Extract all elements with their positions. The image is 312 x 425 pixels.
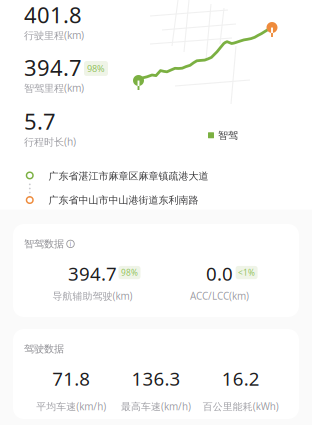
staticText: 智驾数据 xyxy=(24,237,64,250)
staticText: 98% xyxy=(121,267,138,278)
staticText: 71.8 xyxy=(52,366,90,391)
staticText: 394.7 xyxy=(68,261,117,286)
staticText: 广东省湛江市麻章区麻章镇疏港大道 xyxy=(48,170,208,182)
staticText: 5.7 xyxy=(24,106,56,136)
staticText: 导航辅助驾驶(km) xyxy=(52,289,132,303)
staticText: 394.7 xyxy=(24,52,82,82)
staticText: 98% xyxy=(87,62,105,75)
staticText: 136.3 xyxy=(131,366,180,391)
staticText: 广东省中山市中山港街道东利南路 xyxy=(48,194,198,206)
staticText: 行驶里程(km) xyxy=(24,28,84,42)
staticText: 智驾 xyxy=(218,129,238,142)
staticText: 最高车速(km/h) xyxy=(121,400,191,413)
staticText: 百公里能耗(kWh) xyxy=(203,400,279,413)
staticText: 行程时长(h) xyxy=(24,135,76,148)
staticText: 智驾里程(km) xyxy=(24,81,84,95)
staticText: 16.2 xyxy=(222,366,260,391)
staticText: 驾驶数据 xyxy=(24,342,64,355)
staticText: ACC/LCC(km) xyxy=(190,289,249,303)
staticText: <1% xyxy=(238,267,255,278)
staticText: i xyxy=(69,239,71,248)
staticText: 401.8 xyxy=(24,0,82,30)
staticText: 0.0 xyxy=(206,261,233,286)
staticText: 平均车速(km/h) xyxy=(36,400,106,413)
